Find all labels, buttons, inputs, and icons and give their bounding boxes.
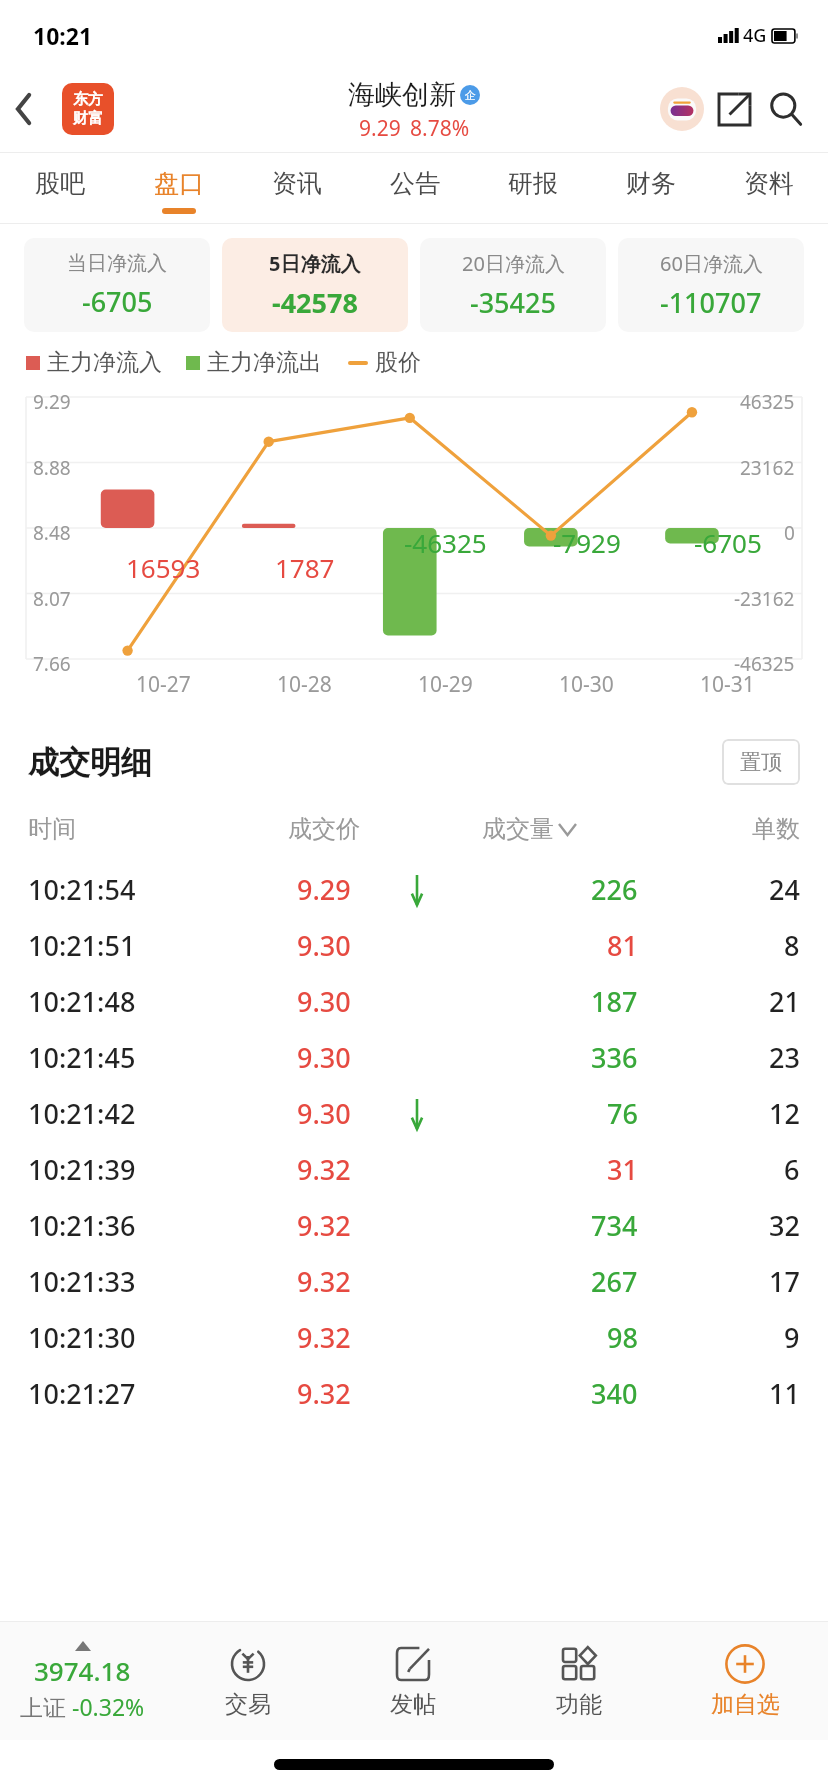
staticText: 5日净流入 bbox=[269, 250, 361, 277]
staticText: 46325 bbox=[740, 389, 795, 415]
button[interactable]: 研报 bbox=[474, 153, 592, 223]
button[interactable]: 成交量 bbox=[482, 814, 576, 844]
staticText: 226 bbox=[591, 871, 638, 908]
staticText: 股吧 bbox=[35, 168, 85, 199]
staticText: 76 bbox=[607, 1095, 638, 1132]
staticText: 8.48 bbox=[33, 520, 71, 546]
button[interactable]: 10:21:30 bbox=[0, 1309, 828, 1365]
staticText: -46325 bbox=[404, 525, 487, 560]
button[interactable]: 功能 bbox=[496, 1622, 662, 1740]
button[interactable]: 财务 bbox=[592, 153, 710, 223]
button[interactable]: 10:21:51 bbox=[0, 917, 828, 973]
staticText: 10:21 bbox=[33, 20, 93, 51]
button[interactable]: 10:21:48 bbox=[0, 973, 828, 1029]
staticText: -110707 bbox=[660, 284, 762, 321]
button[interactable]: 3974.18 bbox=[0, 1622, 165, 1740]
staticText: 时间 bbox=[28, 814, 228, 844]
staticText: 32 bbox=[769, 1207, 800, 1244]
staticText: 东方 bbox=[73, 90, 103, 109]
staticText: 企 bbox=[465, 88, 476, 102]
staticText: 1787 bbox=[275, 550, 335, 585]
staticText: 10-31 bbox=[700, 670, 755, 699]
button[interactable]: 10:21:36 bbox=[0, 1197, 828, 1253]
button[interactable]: Back bbox=[0, 85, 48, 133]
staticText: 9 bbox=[784, 1319, 800, 1356]
staticText: 340 bbox=[591, 1375, 638, 1412]
staticText: 8.88 bbox=[33, 455, 71, 481]
button[interactable]: 加自选 bbox=[662, 1622, 828, 1740]
button[interactable]: 公告 bbox=[356, 153, 474, 223]
button[interactable]: 20日净流入 bbox=[420, 238, 606, 332]
staticText: 10:21:45 bbox=[28, 1039, 228, 1076]
button[interactable]: AI assistant bbox=[656, 83, 708, 135]
staticText: 60日净流入 bbox=[660, 250, 763, 277]
staticText: 盘口 bbox=[154, 168, 204, 199]
staticText: -0.32% bbox=[72, 1691, 145, 1722]
button[interactable]: 资料 bbox=[710, 153, 828, 223]
button[interactable]: 资讯 bbox=[238, 153, 356, 223]
staticText: 6 bbox=[784, 1151, 800, 1188]
button[interactable]: 发帖 bbox=[330, 1622, 496, 1740]
staticText: 4G bbox=[743, 23, 767, 48]
button[interactable]: 股吧 bbox=[0, 153, 119, 223]
staticText: 10:21:30 bbox=[28, 1319, 228, 1356]
staticText: 资料 bbox=[744, 168, 794, 199]
staticText: 10:21:36 bbox=[28, 1207, 228, 1244]
staticText: 16593 bbox=[126, 550, 201, 585]
staticText: 9.30 bbox=[297, 983, 351, 1020]
staticText: 336 bbox=[591, 1039, 638, 1076]
staticText: 24 bbox=[769, 871, 800, 908]
button[interactable]: 置顶 bbox=[722, 739, 800, 785]
staticText: 10:21:51 bbox=[28, 927, 228, 964]
staticText: 8 bbox=[784, 927, 800, 964]
button[interactable]: 当日净流入 bbox=[24, 238, 210, 332]
staticText: 10:21:42 bbox=[28, 1095, 228, 1132]
button[interactable]: 盘口 bbox=[119, 153, 238, 223]
staticText: 8.78% bbox=[410, 114, 470, 143]
staticText: 发帖 bbox=[390, 1690, 436, 1719]
staticText: 3974.18 bbox=[34, 1653, 131, 1688]
staticText: 7.66 bbox=[33, 651, 71, 677]
button[interactable]: 10:21:39 bbox=[0, 1141, 828, 1197]
staticText: 0 bbox=[784, 520, 795, 546]
button[interactable]: 10:21:54 bbox=[0, 861, 828, 917]
staticText: 187 bbox=[591, 983, 638, 1020]
staticText: 10-27 bbox=[136, 670, 191, 699]
button[interactable]: 60日净流入 bbox=[618, 238, 804, 332]
button[interactable]: 10:21:42 bbox=[0, 1085, 828, 1141]
staticText: 267 bbox=[591, 1263, 638, 1300]
staticText: 81 bbox=[607, 927, 638, 964]
button[interactable]: 东方财富 bbox=[62, 83, 114, 135]
staticText: 海峡创新 bbox=[348, 78, 456, 112]
staticText: 交易 bbox=[225, 1690, 271, 1719]
staticText: 9.32 bbox=[297, 1207, 351, 1244]
staticText: 21 bbox=[769, 983, 800, 1020]
button[interactable]: Search bbox=[760, 83, 812, 135]
staticText: 9.29 bbox=[297, 871, 351, 908]
staticText: 财务 bbox=[626, 168, 676, 199]
button[interactable]: 10:21:45 bbox=[0, 1029, 828, 1085]
staticText: 公告 bbox=[390, 168, 440, 199]
staticText: 9.32 bbox=[297, 1263, 351, 1300]
staticText: 资讯 bbox=[272, 168, 322, 199]
staticText: 9.32 bbox=[297, 1375, 351, 1412]
button[interactable]: 5日净流入 bbox=[222, 238, 408, 332]
staticText: 734 bbox=[591, 1207, 638, 1244]
button[interactable]: 交易 bbox=[165, 1622, 330, 1740]
staticText: 功能 bbox=[556, 1690, 602, 1719]
staticText: 10:21:54 bbox=[28, 871, 228, 908]
staticText: 12 bbox=[769, 1095, 800, 1132]
staticText: 研报 bbox=[508, 168, 558, 199]
staticText: 成交明细 bbox=[28, 743, 152, 782]
staticText: 11 bbox=[769, 1375, 800, 1412]
staticText: -7929 bbox=[553, 525, 621, 560]
button[interactable]: 10:21:27 bbox=[0, 1365, 828, 1421]
staticText: 10:21:33 bbox=[28, 1263, 228, 1300]
staticText: 9.30 bbox=[297, 927, 351, 964]
staticText: 10-29 bbox=[418, 670, 473, 699]
staticText: 股价 bbox=[375, 348, 421, 377]
staticText: 10-30 bbox=[559, 670, 614, 699]
staticText: 成交量 bbox=[482, 814, 554, 844]
button[interactable]: Share bbox=[708, 83, 760, 135]
button[interactable]: 10:21:33 bbox=[0, 1253, 828, 1309]
